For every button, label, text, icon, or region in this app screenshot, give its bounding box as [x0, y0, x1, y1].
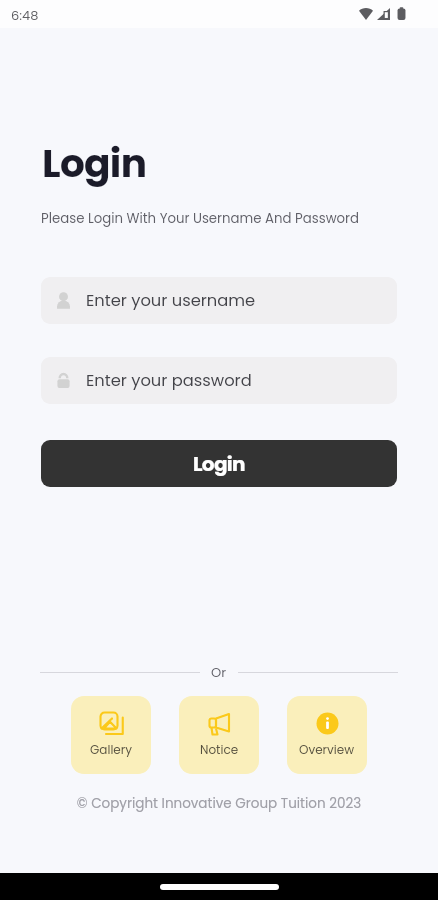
other: Battery	[397, 7, 406, 21]
staticText: © Copyright Innovative Group Tuition 202…	[0, 794, 438, 813]
staticText: Enter your username	[86, 289, 256, 312]
button[interactable]: Enter your password	[41, 357, 397, 404]
staticText: Or	[211, 663, 227, 681]
button[interactable]: Notice	[179, 696, 259, 774]
staticText: Enter your password	[86, 369, 252, 392]
staticText: Overview	[299, 741, 355, 758]
staticText: Gallery	[90, 741, 133, 758]
button[interactable]: Login	[41, 440, 397, 487]
button[interactable]: Gallery	[71, 696, 151, 774]
staticText: 6:48	[11, 6, 39, 24]
staticText: Login	[42, 136, 147, 191]
other: Wi-Fi	[359, 8, 373, 20]
staticText: Please Login With Your Username And Pass…	[41, 209, 360, 228]
other: Mobile signal	[377, 8, 390, 20]
button[interactable]: Overview	[287, 696, 367, 774]
staticText: Notice	[200, 741, 239, 758]
button[interactable]: Enter your username	[41, 277, 397, 324]
staticText: Login	[193, 450, 245, 478]
